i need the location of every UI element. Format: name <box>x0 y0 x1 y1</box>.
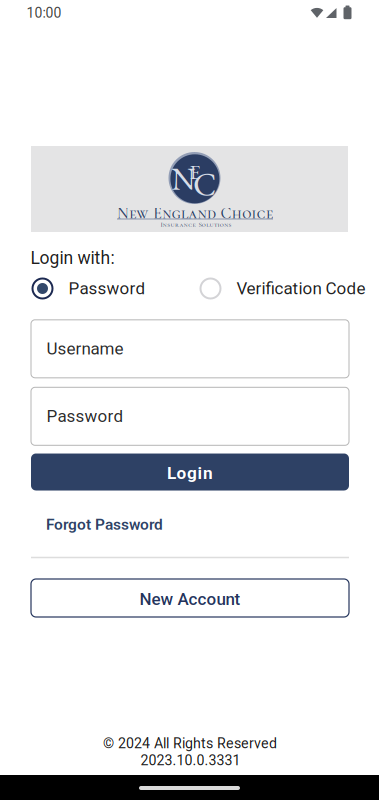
staticText: Login <box>167 463 213 483</box>
button[interactable]: Password <box>31 387 349 445</box>
staticText: Login with: <box>30 248 114 268</box>
staticText: Password <box>46 406 123 426</box>
staticText: Username <box>46 339 123 359</box>
staticText: Password <box>68 278 145 298</box>
staticText: Insurance Solutions <box>160 220 232 229</box>
staticText: New Account <box>139 589 240 609</box>
button[interactable]: Username <box>31 320 349 378</box>
staticText: C <box>193 162 216 206</box>
button[interactable]: Password <box>31 274 181 302</box>
button[interactable]: Login <box>31 453 349 490</box>
staticText: © 2024 All Rights Reserved <box>103 735 277 752</box>
staticText: 10:00 <box>26 5 61 21</box>
button[interactable]: Verification Code <box>199 274 379 302</box>
button[interactable]: Forgot Password <box>46 510 196 538</box>
staticText: Forgot Password <box>46 515 163 534</box>
staticText: 2023.10.0.3331 <box>140 752 240 769</box>
staticText: New England Choice <box>117 204 273 223</box>
button[interactable]: New Account <box>31 579 349 617</box>
staticText: E <box>189 159 200 185</box>
staticText: Verification Code <box>236 278 365 298</box>
staticText: N <box>171 159 195 199</box>
